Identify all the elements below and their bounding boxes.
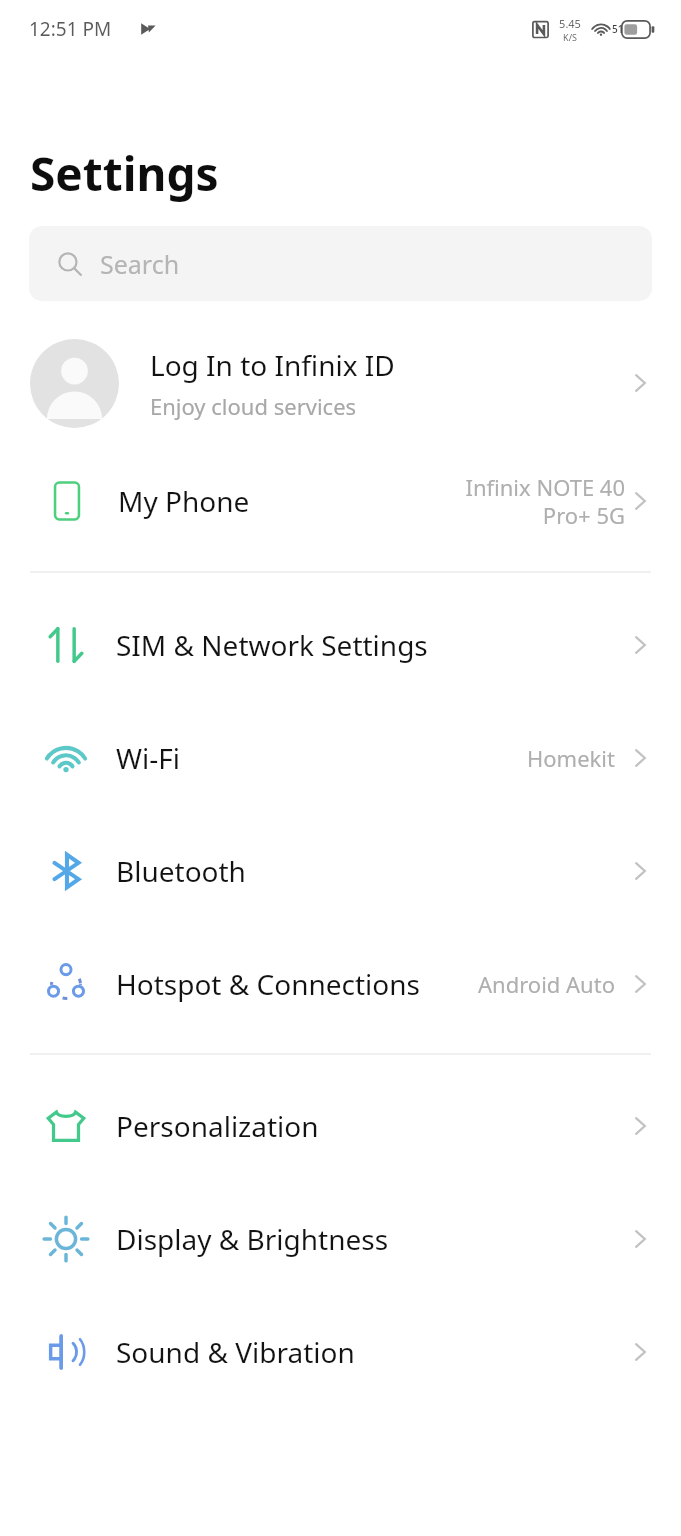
button[interactable]: Sound & Vibration <box>0 1295 681 1408</box>
staticText: Personalization <box>116 1107 625 1145</box>
staticText: 12:51 PM <box>29 16 112 42</box>
staticText: 51 <box>612 22 624 36</box>
button[interactable]: Wi-Fi <box>0 701 681 814</box>
staticText: Hotspot & Connections <box>116 965 478 1003</box>
staticText: Enjoy cloud services <box>150 391 357 421</box>
staticText: Android Auto <box>478 969 615 999</box>
staticText: Search <box>100 247 180 281</box>
staticText: Sound & Vibration <box>116 1333 625 1371</box>
staticText: Homekit <box>527 743 615 773</box>
staticText: Display & Brightness <box>116 1220 625 1258</box>
button[interactable]: Personalization <box>0 1069 681 1182</box>
button[interactable]: Log In to Infinix ID <box>0 322 681 444</box>
staticText: Settings <box>30 142 219 205</box>
button[interactable]: My Phone <box>0 444 681 557</box>
button[interactable]: Display & Brightness <box>0 1182 681 1295</box>
staticText: My Phone <box>118 482 413 520</box>
button[interactable]: Search <box>29 226 652 301</box>
button[interactable]: Bluetooth <box>0 814 681 927</box>
button[interactable]: Hotspot & Connections <box>0 927 681 1040</box>
staticText: Infinix NOTE 40 Pro+ 5G <box>413 472 625 530</box>
staticText: Log In to Infinix ID <box>150 346 395 384</box>
staticText: Bluetooth <box>116 852 625 890</box>
staticText: 5.45 <box>559 16 581 31</box>
staticText: K/S <box>563 31 577 43</box>
staticText: SIM & Network Settings <box>116 626 625 664</box>
staticText: Wi-Fi <box>116 739 527 777</box>
button[interactable]: SIM & Network Settings <box>0 588 681 701</box>
other: My Phone <box>44 478 90 524</box>
